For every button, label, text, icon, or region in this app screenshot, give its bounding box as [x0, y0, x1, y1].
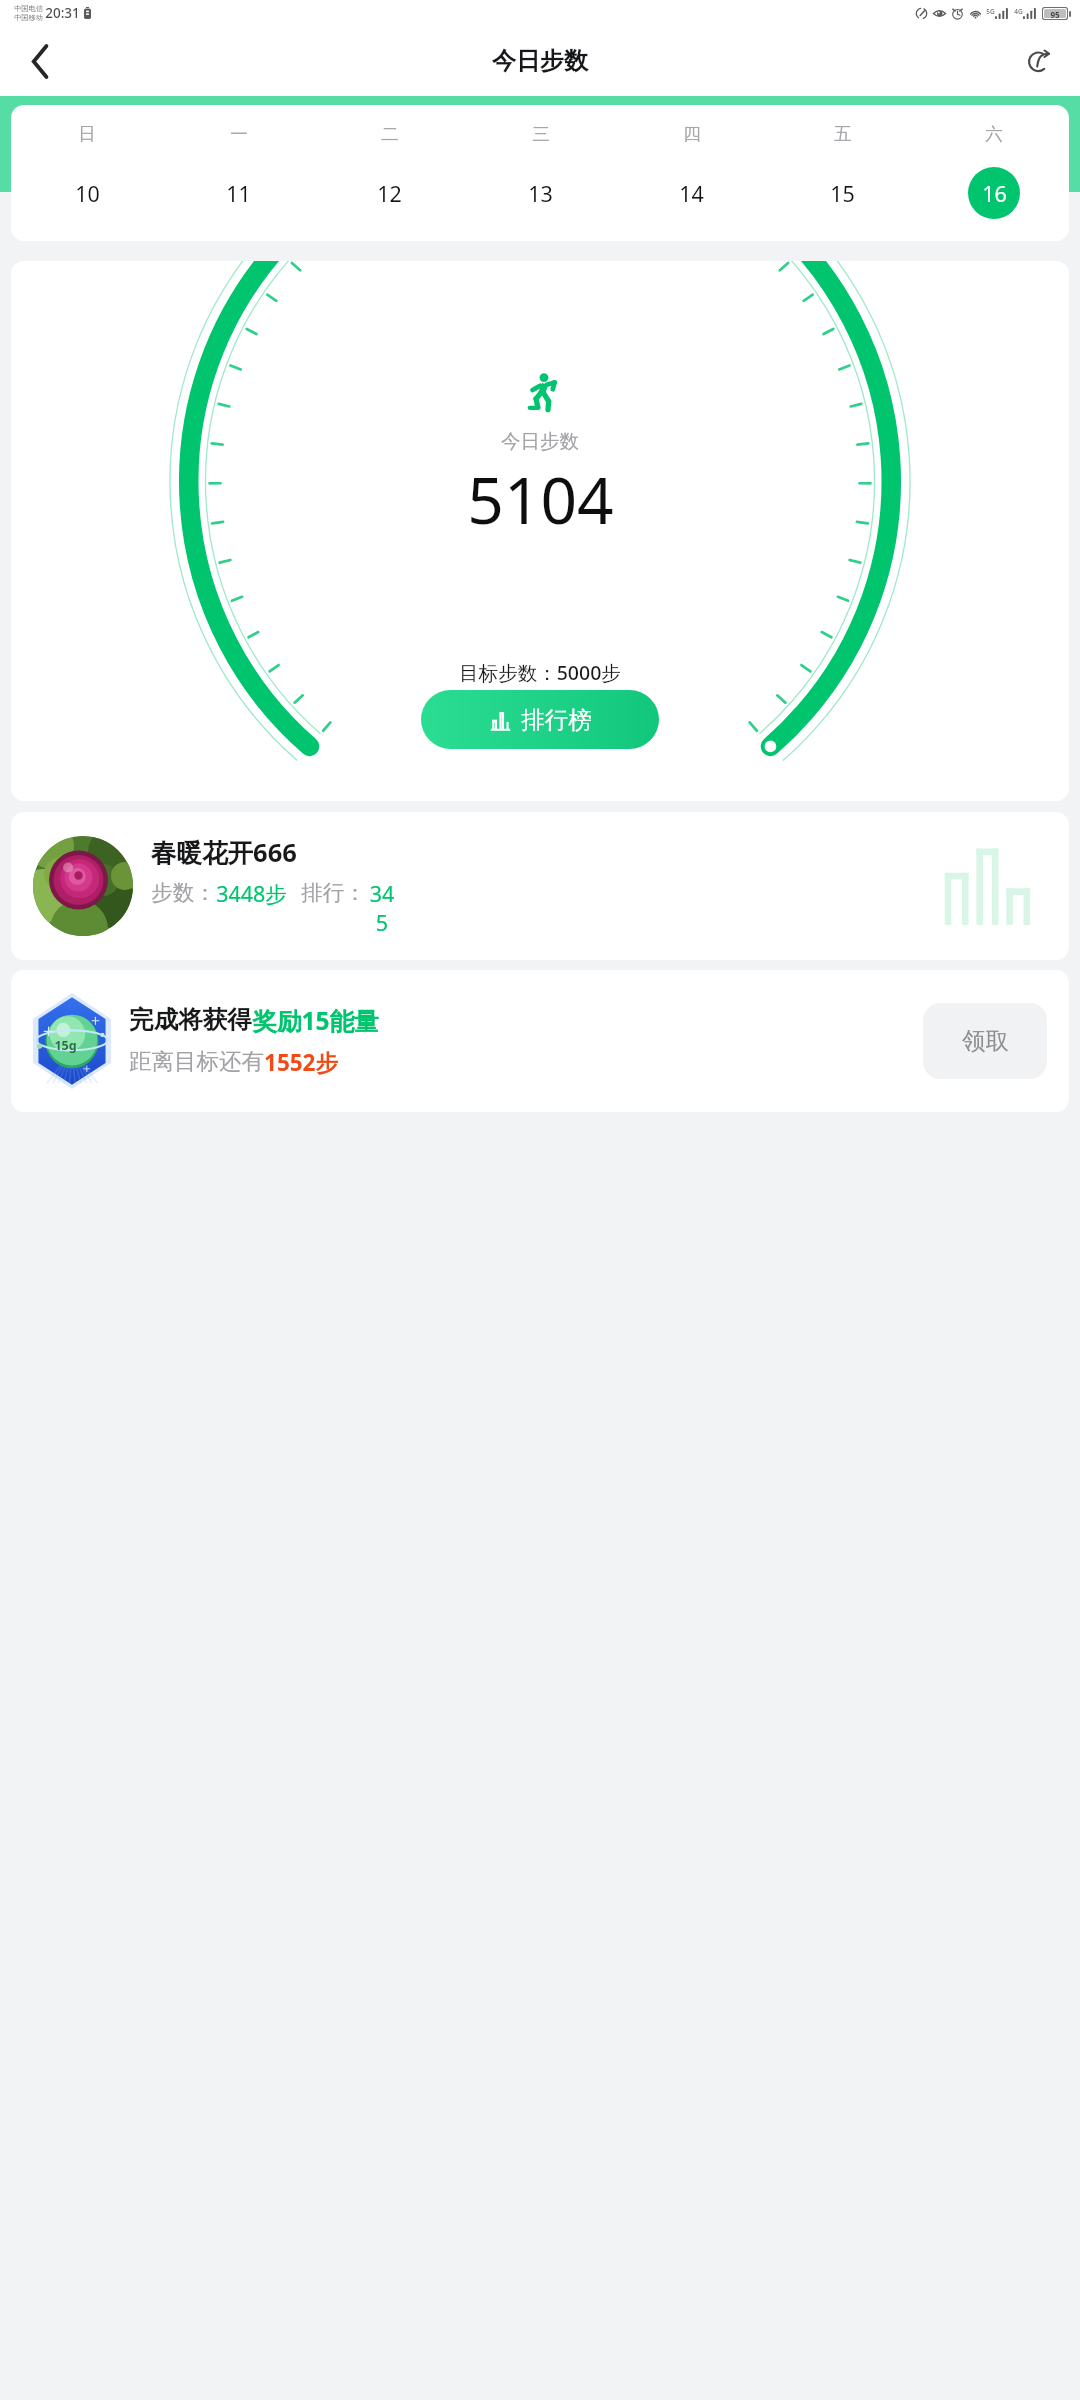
- button[interactable]: 10: [11, 167, 163, 219]
- staticText: 4G: [1014, 7, 1023, 16]
- staticText: 完成将获得: [129, 1004, 252, 1035]
- staticText: 五: [834, 123, 852, 145]
- button[interactable]: 16: [918, 167, 1069, 219]
- staticText: 二: [381, 123, 399, 145]
- staticText: 六: [985, 123, 1003, 145]
- staticText: 奖励15能量: [252, 1004, 379, 1037]
- button[interactable]: 12: [314, 167, 465, 219]
- staticText: 13: [528, 179, 553, 208]
- staticText: 领取: [962, 1026, 1009, 1056]
- staticText: 95: [1050, 9, 1060, 18]
- staticText: 3448步: [216, 879, 287, 908]
- staticText: 目标步数：5000步: [459, 659, 621, 686]
- staticText: 完成目标可获取能量，加油哦!: [424, 698, 657, 722]
- button[interactable]: 13: [465, 167, 616, 219]
- staticText: 距离目标还有: [129, 1047, 264, 1075]
- staticText: 中国电信: [14, 4, 43, 13]
- staticText: 中国移动: [14, 13, 43, 22]
- button[interactable]: Share: [1012, 35, 1064, 87]
- staticText: 15: [830, 179, 855, 208]
- staticText: 1552步: [264, 1047, 338, 1078]
- staticText: 步数：: [151, 879, 216, 906]
- button[interactable]: 15: [767, 167, 918, 219]
- staticText: 20:31: [45, 4, 80, 22]
- staticText: 一: [230, 123, 248, 145]
- button[interactable]: 春暖花开666: [11, 812, 1069, 960]
- staticText: 今日步数: [501, 429, 579, 454]
- staticText: 排行榜: [521, 705, 592, 735]
- button[interactable]: 排行榜: [421, 690, 659, 749]
- button[interactable]: 11: [163, 167, 314, 219]
- button[interactable]: Back: [12, 33, 68, 89]
- staticText: 10: [75, 179, 100, 208]
- staticText: 日: [78, 123, 96, 145]
- staticText: 11: [226, 179, 251, 208]
- staticText: 5104: [467, 456, 614, 543]
- staticText: 春暖花开666: [151, 835, 297, 870]
- staticText: 14: [679, 179, 704, 208]
- staticText: 排行：: [301, 879, 366, 906]
- staticText: 345: [366, 879, 398, 937]
- staticText: 三: [532, 123, 550, 145]
- staticText: 5G: [986, 7, 995, 16]
- staticText: 12: [377, 179, 402, 208]
- button[interactable]: 领取: [923, 1003, 1047, 1079]
- staticText: 今日步数: [492, 46, 588, 76]
- staticText: 15g: [54, 1037, 77, 1054]
- staticText: 16: [982, 179, 1007, 208]
- staticText: 四: [683, 123, 701, 145]
- button[interactable]: 14: [616, 167, 767, 219]
